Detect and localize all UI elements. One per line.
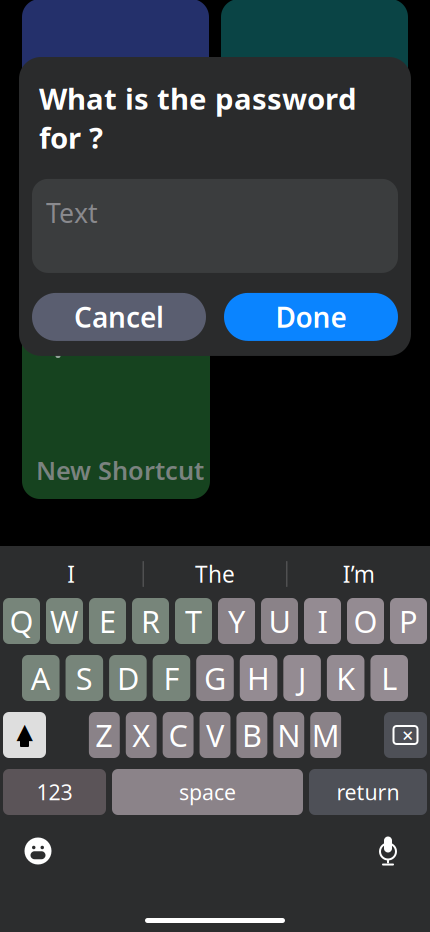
staticText: H <box>247 658 270 698</box>
button[interactable]: Q <box>3 598 40 644</box>
button[interactable]: Done <box>224 293 398 341</box>
staticText: B <box>242 715 262 755</box>
button[interactable]: The <box>144 550 286 598</box>
button[interactable]: T <box>175 598 212 644</box>
button[interactable]: Y <box>218 598 255 644</box>
staticText: S <box>76 658 93 698</box>
button[interactable]: space <box>112 769 303 815</box>
staticText: D <box>117 658 139 698</box>
button[interactable]: Dictation <box>366 829 410 873</box>
staticText: Done <box>275 298 346 335</box>
staticText: L <box>381 658 397 698</box>
staticText: QR Your Wi-Fi <box>36 49 203 83</box>
staticText: A <box>31 658 51 698</box>
staticText: Action Mode <box>235 49 392 83</box>
staticText: Cancel <box>74 298 164 335</box>
staticText: New Shortcut <box>36 453 204 487</box>
button[interactable]: A <box>22 655 60 701</box>
staticText: ▲ <box>16 719 32 743</box>
button[interactable]: Convert to JPEG <box>221 107 408 297</box>
staticText: K <box>336 658 355 698</box>
staticText: G <box>204 658 226 698</box>
staticText: O <box>353 601 377 641</box>
button[interactable]: P <box>390 598 427 644</box>
button[interactable]: hue <box>22 107 209 297</box>
button[interactable]: N <box>273 712 304 758</box>
button[interactable]: H <box>240 655 277 701</box>
button[interactable]: C <box>163 712 194 758</box>
staticText: The <box>195 559 235 589</box>
staticText: Convert to JPEG <box>235 218 366 285</box>
button[interactable]: L <box>370 655 408 701</box>
staticText: V <box>206 715 224 755</box>
button[interactable]: I <box>0 550 143 598</box>
staticText: I <box>317 601 327 641</box>
button[interactable]: return <box>309 769 427 815</box>
staticText: Q <box>9 601 33 641</box>
staticText: T <box>185 601 202 641</box>
staticText: Text <box>46 195 98 230</box>
staticText: E <box>99 601 116 641</box>
button[interactable]: G <box>196 655 234 701</box>
button[interactable]: Cancel <box>32 293 206 341</box>
staticText: × <box>402 722 413 748</box>
staticText: F <box>163 658 179 698</box>
staticText: hue <box>37 128 69 151</box>
button[interactable]: S <box>66 655 103 701</box>
staticText: U <box>268 601 290 641</box>
button[interactable]: M <box>310 712 341 758</box>
staticText: Y <box>228 601 245 641</box>
staticText: 123 <box>36 778 72 806</box>
staticText: M <box>312 715 340 755</box>
staticText: P <box>399 601 418 641</box>
staticText: X <box>132 715 150 755</box>
button[interactable]: B <box>236 712 267 758</box>
button[interactable]: E <box>89 598 126 644</box>
staticText: Z <box>95 715 113 755</box>
button[interactable]: J <box>283 655 321 701</box>
button[interactable]: U <box>261 598 298 644</box>
button[interactable]: X <box>126 712 157 758</box>
button[interactable]: O <box>347 598 384 644</box>
button[interactable]: V <box>200 712 230 758</box>
button[interactable]: Delete <box>384 712 427 758</box>
button[interactable]: W <box>46 598 83 644</box>
staticText: space <box>179 778 236 806</box>
button[interactable]: R <box>132 598 169 644</box>
staticText: C <box>169 715 188 755</box>
staticText: R <box>141 601 160 641</box>
staticText: I <box>67 559 75 589</box>
staticText: N <box>277 715 300 755</box>
staticText: I’m <box>343 559 375 589</box>
button[interactable]: ✦ <box>22 309 210 499</box>
staticText: Hue Sync <box>36 251 150 285</box>
staticText: J <box>298 658 306 698</box>
button[interactable]: Emoji <box>16 829 60 873</box>
button[interactable]: Action Mode <box>221 0 408 95</box>
button[interactable]: F <box>153 655 190 701</box>
button[interactable]: D <box>109 655 147 701</box>
button[interactable]: 123 <box>3 769 106 815</box>
button[interactable]: I’m <box>287 550 430 598</box>
staticText: return <box>336 778 399 806</box>
button[interactable]: K <box>327 655 364 701</box>
button[interactable]: Z <box>89 712 120 758</box>
staticText: What is the password for ? <box>39 79 357 157</box>
button[interactable]: I <box>304 598 341 644</box>
button[interactable]: Shift <box>3 712 46 758</box>
button[interactable]: QR Your Wi-Fi <box>22 0 209 95</box>
staticText: ✦ <box>51 324 67 346</box>
staticText: W <box>50 601 79 641</box>
staticText: ✦ <box>40 333 50 347</box>
